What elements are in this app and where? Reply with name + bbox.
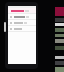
button[interactable] — [8, 20, 36, 25]
button[interactable] — [8, 26, 36, 31]
button[interactable] — [8, 8, 36, 13]
button[interactable] — [8, 14, 36, 19]
button[interactable]: Volume button — [4, 22, 6, 32]
